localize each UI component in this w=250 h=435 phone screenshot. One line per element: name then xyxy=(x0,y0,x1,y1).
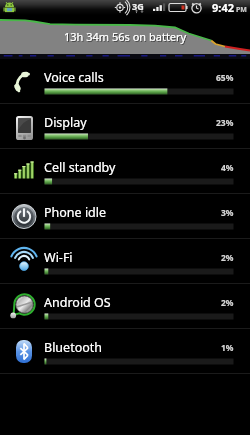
staticText: 65% xyxy=(216,72,234,84)
staticText: Wi-Fi xyxy=(44,249,73,266)
staticText: Display xyxy=(44,114,87,131)
staticText: 3% xyxy=(221,207,234,219)
staticText: 13h 34m 56s on battery xyxy=(64,29,187,44)
staticText: 1% xyxy=(221,342,234,354)
staticText: Cell standby xyxy=(44,159,116,176)
staticText: Android OS xyxy=(44,294,111,311)
button[interactable]: Wi-Fi xyxy=(0,239,250,284)
staticText: 3G xyxy=(132,0,144,12)
staticText: Phone idle xyxy=(44,204,107,221)
button[interactable]: Phone idle xyxy=(0,194,250,239)
staticText: Voice calls xyxy=(44,69,104,86)
staticText: 9:42 xyxy=(212,0,234,15)
staticText: 13h 34m 56s on battery xyxy=(65,30,188,45)
staticText: 2% xyxy=(221,297,234,309)
staticText: 4% xyxy=(221,162,234,174)
button[interactable]: Voice calls xyxy=(0,59,250,104)
button[interactable]: Android OS xyxy=(0,284,250,329)
button[interactable]: Cell standby xyxy=(0,149,250,194)
button[interactable]: Display xyxy=(0,104,250,149)
button[interactable]: Bluetooth xyxy=(0,329,250,374)
staticText: Bluetooth xyxy=(44,339,103,356)
staticText: PM xyxy=(236,5,247,15)
staticText: 2% xyxy=(221,252,234,264)
staticText: 23% xyxy=(216,117,234,129)
